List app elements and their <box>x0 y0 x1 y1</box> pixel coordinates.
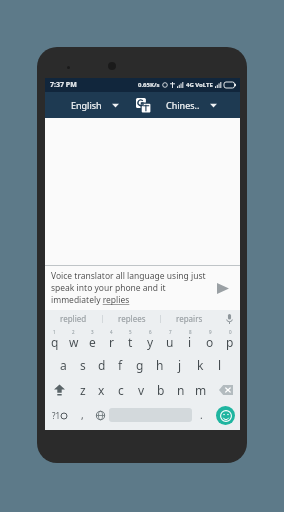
button[interactable]: l <box>210 352 230 377</box>
button[interactable]: h <box>150 352 170 377</box>
button[interactable]: 7 <box>160 327 180 352</box>
button[interactable]: replied <box>45 310 102 327</box>
staticText: w <box>69 334 79 350</box>
button[interactable]: v <box>131 377 151 402</box>
staticText: m <box>195 382 207 398</box>
button[interactable]: b <box>151 377 171 402</box>
staticText: 6 <box>149 329 152 335</box>
staticText: p <box>226 334 234 350</box>
staticText: 3 <box>91 329 94 335</box>
button[interactable]: s <box>73 352 92 377</box>
staticText: g <box>136 357 144 373</box>
button[interactable]: Send <box>212 277 234 299</box>
button[interactable]: 5 <box>121 327 140 352</box>
button[interactable]: c <box>111 377 131 402</box>
staticText: 0.65K/s <box>138 81 160 89</box>
staticText: h <box>156 357 164 373</box>
button[interactable]: 0 <box>220 327 240 352</box>
button[interactable]: Voice input <box>218 310 240 327</box>
staticText: t <box>128 334 133 350</box>
staticText: 1 <box>53 329 56 335</box>
staticText: c <box>118 382 124 398</box>
button[interactable]: z <box>73 377 92 402</box>
staticText: 9 <box>209 329 212 335</box>
button[interactable]: k <box>190 352 210 377</box>
button[interactable]: 1 <box>45 327 64 352</box>
staticText: . <box>200 408 203 422</box>
button[interactable]: Emoji <box>210 402 240 428</box>
staticText: x <box>98 382 105 398</box>
staticText: j <box>178 357 182 373</box>
button[interactable]: Swap languages <box>135 97 151 113</box>
staticText: 2 <box>72 329 75 335</box>
button[interactable]: 9 <box>200 327 220 352</box>
staticText: o <box>206 334 214 350</box>
staticText: v <box>138 382 145 398</box>
staticText: e <box>89 334 96 350</box>
staticText: 0 <box>229 329 232 335</box>
button[interactable]: repairs <box>161 310 218 327</box>
staticText: l <box>218 357 222 373</box>
staticText: ?1 <box>52 410 61 421</box>
staticText: 7 <box>169 329 172 335</box>
button[interactable]: ?1 <box>45 402 74 428</box>
button[interactable]: a <box>54 352 73 377</box>
staticText: q <box>51 334 59 350</box>
staticText: Chines.. <box>166 99 200 111</box>
staticText: y <box>147 334 154 350</box>
button[interactable]: 8 <box>180 327 200 352</box>
staticText: b <box>157 382 165 398</box>
button[interactable]: j <box>170 352 190 377</box>
staticText: k <box>197 357 204 373</box>
button[interactable]: , <box>74 402 91 428</box>
staticText: i <box>188 334 192 350</box>
staticText: a <box>60 357 67 373</box>
button[interactable]: m <box>191 377 211 402</box>
staticText: English <box>71 99 102 111</box>
staticText: 8 <box>189 329 192 335</box>
button[interactable]: 2 <box>64 327 83 352</box>
button[interactable]: g <box>130 352 150 377</box>
button[interactable]: 6 <box>140 327 160 352</box>
button[interactable]: Backspace <box>211 377 240 402</box>
button[interactable]: . <box>192 402 210 428</box>
staticText: z <box>80 382 86 398</box>
staticText: replied <box>60 313 87 324</box>
staticText: repairs <box>176 313 203 324</box>
staticText: Voice translator all language using just… <box>51 270 212 306</box>
staticText: n <box>177 382 185 398</box>
staticText: u <box>166 334 174 350</box>
button[interactable]: replees <box>103 310 160 327</box>
button[interactable]: English <box>55 92 135 118</box>
button[interactable]: x <box>92 377 111 402</box>
staticText: d <box>98 357 106 373</box>
staticText: f <box>118 357 123 373</box>
staticText: s <box>80 357 86 373</box>
staticText: 5 <box>129 329 132 335</box>
button[interactable]: Shift <box>45 377 73 402</box>
staticText: 4G VoLTE <box>186 81 213 89</box>
button[interactable]: Change keyboard language <box>91 402 109 428</box>
staticText: , <box>81 408 84 422</box>
button[interactable]: f <box>111 352 130 377</box>
button[interactable]: Chines.. <box>151 92 232 118</box>
staticText: r <box>109 334 114 350</box>
staticText: 7:37 PM <box>50 80 77 90</box>
button[interactable]: n <box>171 377 191 402</box>
button[interactable]: 4 <box>102 327 121 352</box>
staticText: replees <box>118 313 146 324</box>
button[interactable]: 3 <box>83 327 102 352</box>
staticText: 4 <box>110 329 113 335</box>
button[interactable]: d <box>92 352 111 377</box>
